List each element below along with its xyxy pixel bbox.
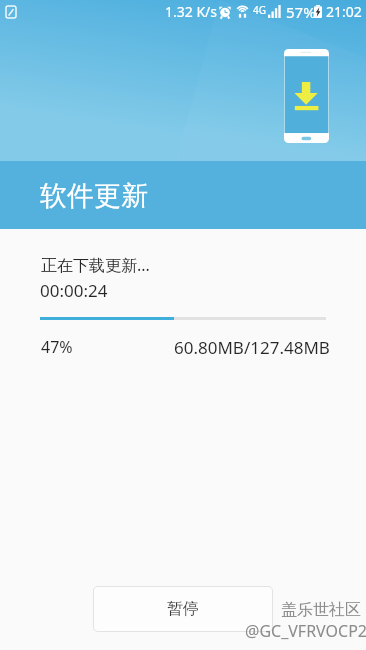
staticText: 暂停 [167,599,199,619]
staticText: 4G [253,3,266,17]
other: Software update [284,49,329,143]
staticText: 盖乐世社区 [281,600,361,620]
staticText: 60.80MB/127.48MB [174,336,330,359]
staticText: 47% [41,336,73,358]
staticText: 正在下载更新... [41,254,150,276]
staticText: 1.32 K/s [165,2,217,21]
button[interactable]: 暂停 [94,587,272,631]
staticText: 21:02 [326,2,362,21]
staticText: 00:00:24 [40,279,108,302]
staticText: 软件更新 [40,179,148,213]
staticText: 57% [286,2,316,22]
staticText: @GC_VFRVOCP2 [245,620,366,642]
